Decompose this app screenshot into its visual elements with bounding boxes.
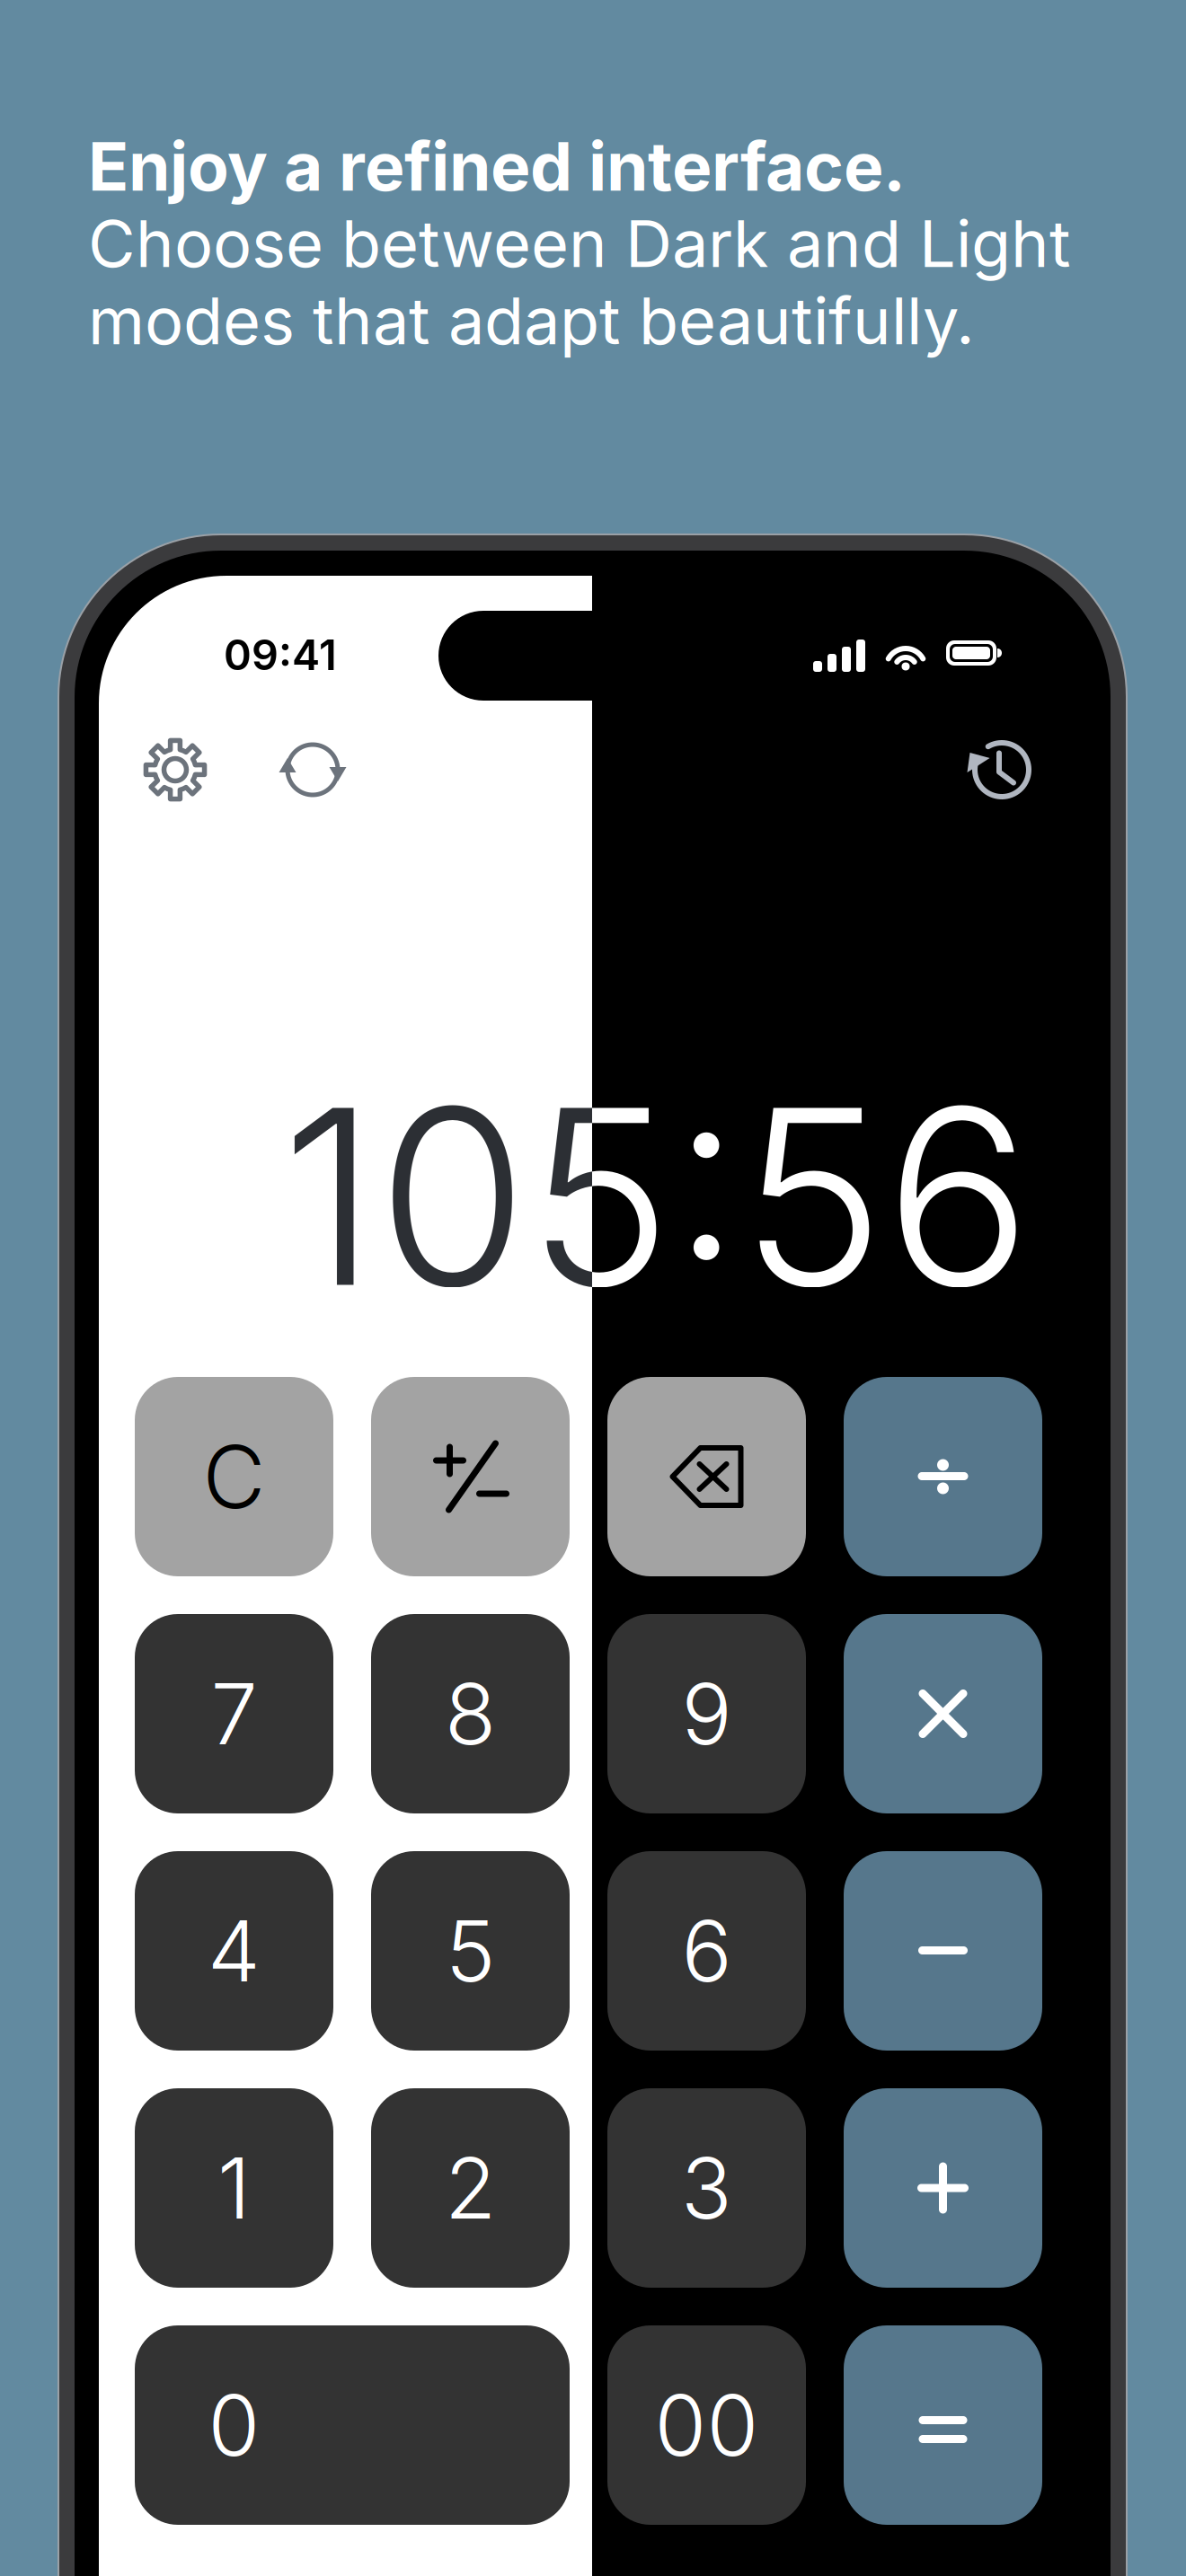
button[interactable]: Swap units: [263, 720, 362, 819]
staticText: 5: [446, 1900, 495, 2002]
staticText: 105:56: [281, 1049, 1031, 1344]
staticText: 00: [655, 2374, 759, 2476]
button[interactable]: Plus: [844, 2088, 1042, 2288]
staticText: 6: [682, 1900, 732, 2002]
button[interactable]: [135, 1614, 333, 1813]
staticText: 4: [208, 1900, 261, 2002]
button[interactable]: [607, 1614, 806, 1813]
button[interactable]: [371, 1614, 570, 1813]
staticText: 0: [208, 2374, 260, 2476]
button[interactable]: [607, 1851, 806, 2051]
staticText: 7: [211, 1663, 257, 1764]
button[interactable]: Plus minus: [371, 1377, 570, 1576]
button[interactable]: [135, 2088, 333, 2288]
button[interactable]: [135, 2325, 570, 2525]
button[interactable]: [607, 2325, 806, 2525]
staticText: 9: [682, 1663, 732, 1764]
button[interactable]: Delete: [607, 1377, 806, 1576]
staticText: 3: [681, 2137, 732, 2239]
staticText: 1: [217, 2137, 251, 2239]
button[interactable]: Minus: [844, 1851, 1042, 2051]
button[interactable]: [371, 1851, 570, 2051]
button[interactable]: [135, 1851, 333, 2051]
button[interactable]: [371, 2088, 570, 2288]
button[interactable]: Multiply: [844, 1614, 1042, 1813]
staticText: C: [203, 1424, 266, 1529]
button[interactable]: Settings: [126, 720, 225, 819]
button[interactable]: Clear: [135, 1377, 333, 1576]
staticText: 105:56: [281, 1049, 1031, 1344]
staticText: 8: [445, 1663, 496, 1764]
staticText: Enjoy a refined interface.: [88, 126, 906, 207]
button[interactable]: [607, 2088, 806, 2288]
button[interactable]: Equals: [844, 2325, 1042, 2525]
button[interactable]: Divide: [844, 1377, 1042, 1576]
staticText: 2: [445, 2137, 496, 2239]
staticText: 09:41: [224, 629, 337, 680]
staticText: Choose between Dark and Light: [88, 204, 1071, 282]
button[interactable]: History: [952, 720, 1051, 819]
staticText: modes that adapt beautifully.: [88, 281, 975, 360]
